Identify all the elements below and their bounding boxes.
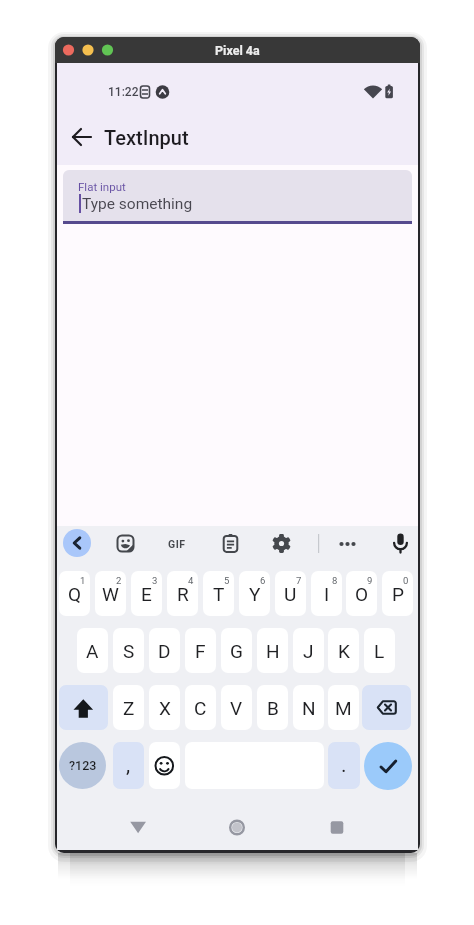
staticText: Type something [82,195,193,213]
button[interactable]: Z [113,685,144,730]
button[interactable]: D [149,628,180,673]
button[interactable]: , [113,742,144,789]
staticText: 9 [367,575,373,586]
button[interactable]: O [346,571,377,616]
button[interactable] [334,530,361,557]
staticText: O [355,583,369,605]
staticText: P [392,583,404,605]
staticText: , [126,753,131,778]
button[interactable] [364,742,412,790]
staticText: Q [68,583,82,605]
staticText: U [284,583,297,605]
button[interactable] [59,685,108,730]
staticText: GIF [168,538,186,550]
staticText: L [374,640,385,662]
button[interactable]: U [275,571,306,616]
button[interactable]: J [293,628,324,673]
button[interactable] [149,742,180,789]
staticText: A [86,640,99,662]
button[interactable] [362,685,411,730]
button[interactable]: H [257,628,288,673]
staticText: S [123,640,135,662]
button[interactable] [63,529,91,557]
button[interactable] [118,807,158,847]
button[interactable] [66,121,98,153]
staticText: TextInput [104,126,189,149]
staticText: J [303,640,314,662]
button[interactable]: G [221,628,252,673]
staticText: D [158,640,171,662]
staticText: G [230,640,243,662]
staticText: V [230,697,243,719]
staticText: E [141,583,152,605]
button[interactable]: . [328,742,360,789]
button[interactable] [217,530,244,557]
button[interactable]: R [167,571,198,616]
button[interactable]: W [95,571,126,616]
staticText: M [335,697,352,719]
button[interactable]: Q [59,571,90,616]
button[interactable]: M [328,685,359,730]
button[interactable]: I [311,571,342,616]
staticText: B [267,697,279,719]
staticText: 8 [332,575,338,586]
button[interactable] [217,807,257,847]
button[interactable]: GIF [160,530,194,557]
button[interactable]: F [185,628,216,673]
staticText: R [177,583,189,605]
staticText: 4 [188,575,194,586]
staticText: Z [123,697,135,719]
staticText: Y [249,583,261,605]
button[interactable]: S [113,628,144,673]
staticText: 1 [80,575,86,586]
button[interactable]: X [149,685,180,730]
staticText: 3 [152,575,158,586]
button[interactable]: B [257,685,288,730]
button[interactable]: Y [239,571,270,616]
staticText: T [213,583,225,605]
staticText: X [159,697,171,719]
button[interactable] [63,170,412,221]
staticText: 0 [403,575,409,586]
staticText: C [194,697,207,719]
staticText: 7 [296,575,302,586]
button[interactable]: E [131,571,162,616]
staticText: 6 [260,575,266,586]
button[interactable] [112,530,139,557]
button[interactable]: V [221,685,252,730]
staticText: F [195,640,206,662]
button[interactable]: C [185,685,216,730]
staticText: 5 [224,575,230,586]
button[interactable]: ?123 [59,742,106,789]
staticText: Flat input [78,180,126,193]
staticText: K [338,640,350,662]
staticText: Pixel 4a [215,43,260,58]
staticText: H [266,640,280,662]
staticText: 11:22 [108,85,139,99]
button[interactable]: T [203,571,234,616]
button[interactable]: N [293,685,324,730]
staticText: N [302,697,316,719]
button[interactable]: K [328,628,359,673]
staticText: W [102,583,119,605]
staticText: 2 [116,575,122,586]
button[interactable]: A [77,628,108,673]
button[interactable] [317,807,357,847]
staticText: . [341,753,347,778]
staticText: I [324,583,330,605]
staticText: ?123 [69,758,97,773]
button[interactable]: L [364,628,395,673]
button[interactable]: P [382,571,413,616]
button[interactable] [268,530,295,557]
button[interactable] [387,530,414,557]
